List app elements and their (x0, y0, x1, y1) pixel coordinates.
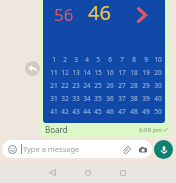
staticText: 31 (50, 94, 58, 103)
staticText: 16 (106, 68, 114, 77)
staticText: 33 (72, 94, 80, 103)
staticText: 10 (154, 55, 162, 64)
staticText: 13 (72, 68, 80, 77)
staticText: 27 (118, 81, 126, 90)
staticText: 2 (63, 55, 67, 64)
staticText: 37 (118, 94, 126, 103)
staticText: 26 (106, 81, 114, 90)
staticText: 39 (142, 94, 150, 103)
staticText: 7 (120, 55, 124, 64)
staticText: 5 (96, 55, 100, 64)
staticText: 50 (154, 107, 162, 116)
staticText: 42 (61, 107, 69, 116)
staticText: 46 (106, 107, 114, 116)
staticText: 17 (118, 68, 126, 77)
staticText: 8 (132, 55, 136, 64)
button[interactable]: Forward (25, 61, 40, 76)
staticText: 6 (108, 55, 112, 64)
staticText: 56 (54, 3, 74, 26)
staticText: 24 (83, 81, 91, 90)
staticText: 28 (130, 81, 138, 90)
staticText: 29 (142, 81, 150, 90)
staticText: Type a message (23, 144, 80, 154)
staticText: 22 (61, 81, 69, 90)
button[interactable]: 56 (40, 0, 169, 137)
staticText: 14 (83, 68, 91, 77)
button[interactable]: Emoji (6, 143, 18, 155)
staticText: 6:09 pm (139, 126, 162, 134)
staticText: 30 (154, 81, 162, 90)
staticText: 20 (154, 68, 162, 77)
staticText: 45 (94, 107, 102, 116)
staticText: 12 (61, 68, 69, 77)
button[interactable]: Attach (119, 143, 132, 156)
button[interactable]: Emoji (2, 140, 152, 158)
button[interactable]: Recents (114, 163, 132, 182)
button[interactable]: Back (43, 163, 61, 182)
staticText: 9 (144, 55, 148, 64)
staticText: 49 (142, 107, 150, 116)
staticText: 36 (106, 94, 114, 103)
staticText: 48 (130, 107, 138, 116)
button[interactable]: Home (79, 163, 97, 182)
staticText: 47 (118, 107, 126, 116)
staticText: 35 (94, 94, 102, 103)
staticText: 44 (83, 107, 91, 116)
button[interactable]: Camera (136, 143, 149, 156)
staticText: 43 (72, 107, 80, 116)
staticText: 21 (50, 81, 58, 90)
staticText: 38 (130, 94, 138, 103)
staticText: Board (45, 124, 68, 135)
staticText: 23 (72, 81, 80, 90)
staticText: 4 (85, 55, 89, 64)
staticText: 34 (83, 94, 91, 103)
staticText: 40 (154, 94, 162, 103)
staticText: 46 (88, 0, 111, 26)
staticText: 15 (94, 68, 102, 77)
staticText: 32 (61, 94, 69, 103)
staticText: 41 (50, 107, 58, 116)
staticText: 3 (74, 55, 78, 64)
button[interactable]: Voice message (154, 140, 173, 159)
staticText: 11 (50, 68, 58, 77)
staticText: 18 (130, 68, 138, 77)
staticText: 19 (142, 68, 150, 77)
staticText: 25 (94, 81, 102, 90)
staticText: 1 (52, 55, 56, 64)
